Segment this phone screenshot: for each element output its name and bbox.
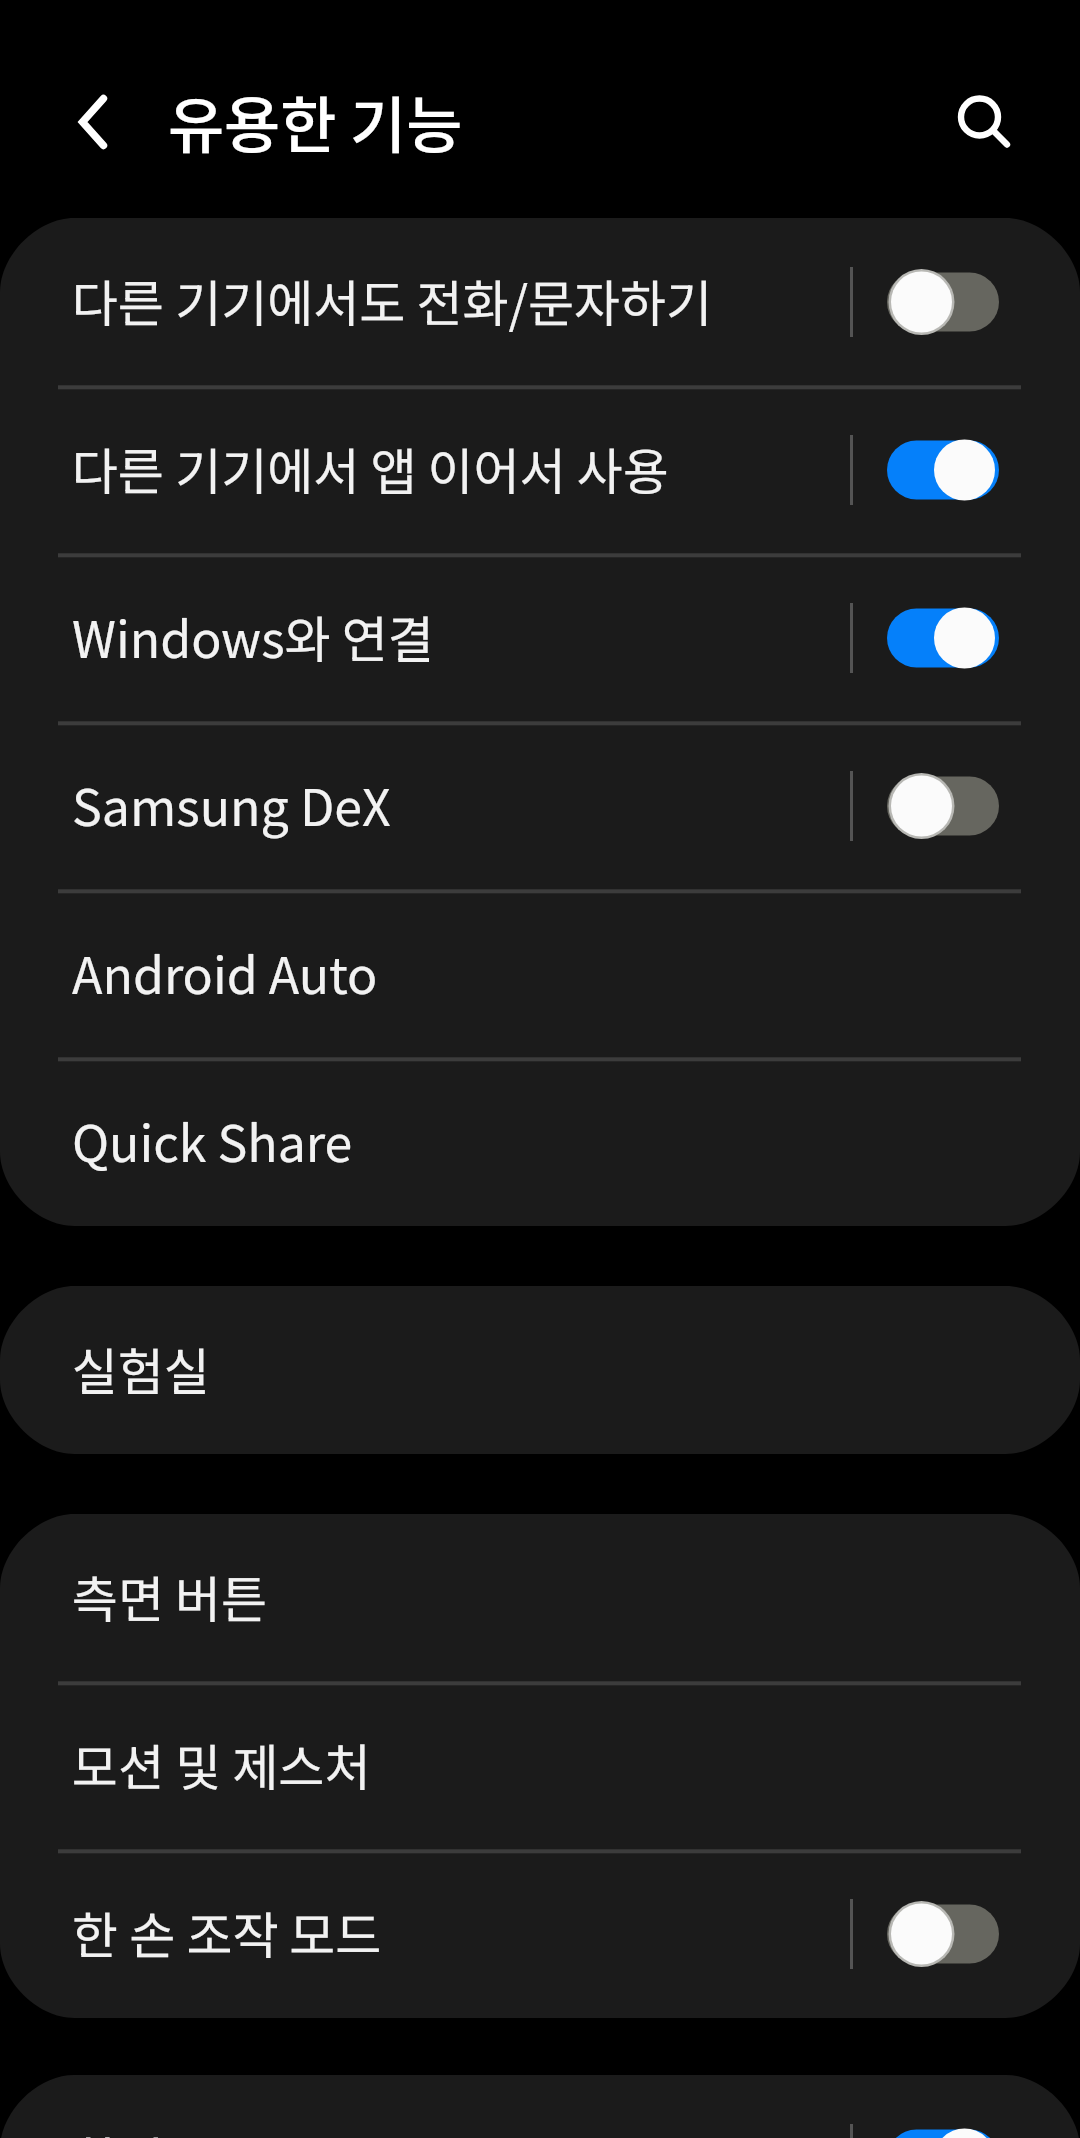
staticText: 화면 보호 — [72, 2121, 268, 2138]
button[interactable]: 화면 보호 — [0, 2075, 1080, 2138]
staticText: Samsung DeX — [72, 768, 391, 840]
button[interactable]: Windows와 연결 — [0, 554, 1080, 722]
button[interactable]: 다른 기기에서 앱 이어서 사용 — [0, 386, 1080, 554]
button[interactable]: Search — [905, 42, 1055, 192]
button[interactable]: 한 손 조작 모드 — [0, 1850, 1080, 2018]
button[interactable]: 실험실 — [0, 1286, 1080, 1454]
button[interactable]: Android Auto — [0, 890, 1080, 1058]
button[interactable]: Samsung DeX — [0, 722, 1080, 890]
staticText: 측면 버튼 — [72, 1560, 268, 1632]
staticText: 다른 기기에서도 전화/문자하기 — [72, 264, 712, 336]
staticText: 실험실 — [72, 1332, 210, 1404]
button[interactable]: 모션 및 제스처 — [0, 1682, 1080, 1850]
staticText: 모션 및 제스처 — [72, 1728, 371, 1800]
staticText: 한 손 조작 모드 — [72, 1896, 382, 1968]
staticText: Android Auto — [72, 936, 378, 1008]
button[interactable]: Turn off — [850, 554, 1046, 722]
button[interactable]: Turn on — [850, 218, 1046, 386]
button[interactable]: 다른 기기에서도 전화/문자하기 — [0, 218, 1080, 386]
button[interactable]: Turn off — [850, 386, 1046, 554]
staticText: Windows와 연결 — [72, 600, 434, 672]
button[interactable]: Navigate up — [18, 47, 168, 197]
button[interactable]: Turn on — [850, 722, 1046, 890]
staticText: 유용한 기능 — [168, 77, 463, 165]
button[interactable]: Quick Share — [0, 1058, 1080, 1226]
staticText: Quick Share — [72, 1104, 353, 1176]
staticText: 다른 기기에서 앱 이어서 사용 — [72, 432, 669, 504]
button[interactable]: Turn off — [850, 2075, 1046, 2138]
button[interactable]: Turn on — [850, 1850, 1046, 2018]
button[interactable]: 측면 버튼 — [0, 1514, 1080, 1682]
